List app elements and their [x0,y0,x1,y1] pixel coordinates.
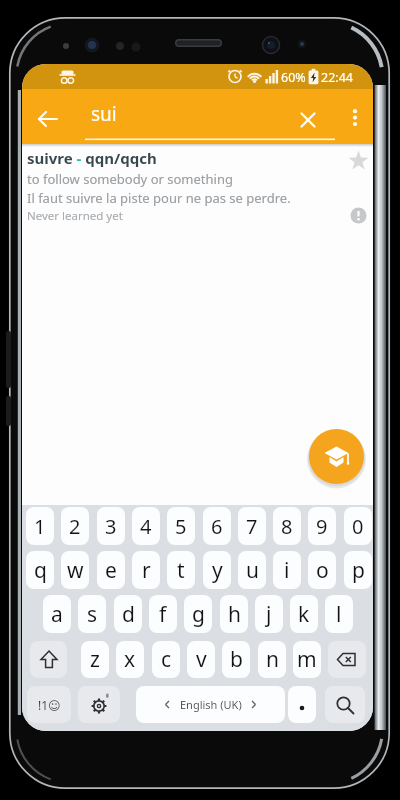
button[interactable]: v [187,641,215,678]
button[interactable] [328,641,366,678]
staticText: suivre - qqn/qqch [27,148,157,168]
button[interactable]: 5 [167,507,195,545]
button[interactable]: c [152,641,180,678]
button[interactable] [344,147,372,175]
button[interactable]: d [114,595,142,633]
staticText: x [124,645,136,674]
staticText: n [266,645,279,674]
button[interactable] [22,146,373,224]
staticText: q [34,556,47,585]
button[interactable] [344,201,373,230]
staticText: j [266,600,272,629]
button[interactable] [34,105,62,133]
staticText: 6 [211,513,223,540]
button[interactable]: b [222,641,250,678]
staticText: 5 [175,513,187,540]
button[interactable]: m [293,641,321,678]
staticText: !1☺ [38,697,61,713]
button[interactable] [288,686,316,723]
staticText: 0 [352,513,364,540]
staticText: o [316,556,329,585]
button[interactable]: 4 [132,507,160,545]
button[interactable]: 3 [97,507,125,545]
button[interactable]: 8 [273,507,301,545]
staticText: Never learned yet [27,208,123,224]
staticText: g [192,600,205,629]
button[interactable]: t [167,551,195,589]
button[interactable]: g [184,595,212,633]
staticText: 2 [69,513,81,540]
button[interactable]: p [344,551,372,589]
staticText: 7 [246,513,258,540]
button[interactable]: r [132,551,160,589]
staticText: l [336,600,342,629]
staticText: v [196,645,207,674]
staticText: sui [91,101,117,127]
button[interactable]: 1 [26,507,54,545]
staticText: y [212,556,223,585]
staticText: c [161,645,172,674]
button[interactable]: u [238,551,266,589]
button[interactable]: y [203,551,231,589]
button[interactable]: z [81,641,109,678]
button[interactable] [341,103,369,131]
staticText: k [298,600,310,629]
button[interactable]: i [273,551,301,589]
staticText: t [177,556,185,585]
staticText: m [297,645,317,674]
staticText: 60% [281,69,306,86]
staticText: z [90,645,100,674]
button[interactable]: a [43,595,71,633]
button[interactable]: j [255,595,283,633]
staticText: Il faut suivre la piste pour ne pas se p… [27,189,291,207]
staticText: d [122,600,135,629]
button[interactable]: 0 [344,507,372,545]
button[interactable]: x [116,641,144,678]
staticText: e [105,556,117,585]
staticText: b [230,645,243,674]
button[interactable]: English (UK) [136,686,285,723]
button[interactable] [30,641,67,678]
staticText: 8 [281,513,293,540]
button[interactable]: h [220,595,248,633]
button[interactable] [78,686,120,723]
staticText: 9 [316,513,328,540]
staticText: f [159,600,167,629]
staticText: 4 [140,513,152,540]
staticText: 3 [105,513,117,540]
button[interactable]: !1☺ [27,686,71,723]
staticText: u [246,556,259,585]
button[interactable]: 2 [61,507,89,545]
button[interactable]: 7 [238,507,266,545]
staticText: to follow somebody or something [27,170,233,188]
button[interactable]: e [97,551,125,589]
staticText: 1 [34,513,46,540]
button[interactable]: 9 [308,507,336,545]
staticText: English (UK) [180,697,242,712]
button[interactable] [294,104,322,132]
staticText: i [284,556,290,585]
staticText: r [142,556,151,585]
staticText: w [67,556,84,585]
button[interactable]: w [61,551,89,589]
staticText: s [87,600,98,629]
button[interactable] [325,686,365,723]
button[interactable]: s [78,595,106,633]
button[interactable]: f [149,595,177,633]
button[interactable]: n [258,641,286,678]
staticText: h [228,600,241,629]
staticText: a [51,600,63,629]
button[interactable]: k [290,595,318,633]
staticText: p [352,556,365,585]
button[interactable]: l [325,595,353,633]
button[interactable]: q [26,551,54,589]
staticText: 22:44 [321,69,353,86]
button[interactable] [309,429,364,484]
button[interactable]: 6 [203,507,231,545]
button[interactable]: o [308,551,336,589]
